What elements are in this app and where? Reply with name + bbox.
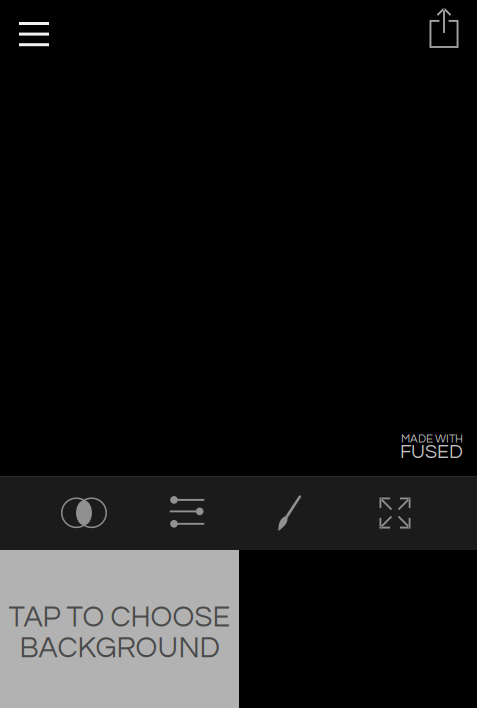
button[interactable]: TAP TO CHOOSE xyxy=(0,550,239,708)
button[interactable]: Blend xyxy=(31,476,137,550)
button[interactable]: Transform xyxy=(342,476,448,550)
button[interactable]: Share xyxy=(413,0,475,57)
staticText: TAP TO CHOOSE xyxy=(8,603,230,632)
staticText: FUSED xyxy=(400,442,463,462)
staticText: BACKGROUND xyxy=(19,633,219,663)
button[interactable]: Menu xyxy=(2,4,66,64)
staticText: MADE WITH xyxy=(401,433,463,445)
button[interactable]: Draw xyxy=(237,476,343,550)
button[interactable]: Adjust xyxy=(134,476,240,550)
